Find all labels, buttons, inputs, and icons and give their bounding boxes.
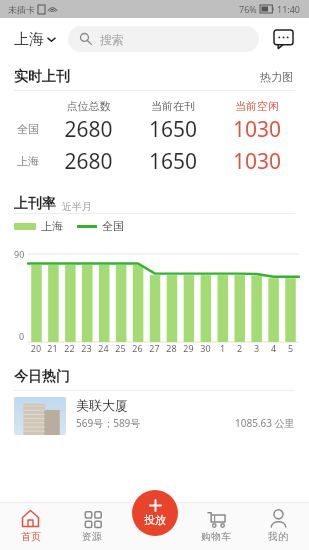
staticText: 购物车 bbox=[201, 530, 231, 543]
staticText: 上海 bbox=[10, 154, 46, 168]
button[interactable]: 搜索 bbox=[68, 26, 259, 52]
button[interactable]: 上海 bbox=[10, 145, 299, 177]
staticText: 搜索 bbox=[100, 32, 124, 47]
staticText: 1 bbox=[214, 342, 231, 354]
button[interactable]: 全国 bbox=[10, 113, 299, 145]
staticText: 0 bbox=[19, 330, 25, 342]
staticText: 4 bbox=[265, 342, 282, 354]
button[interactable]: 购物车 bbox=[185, 502, 247, 550]
staticText: 25 bbox=[112, 342, 129, 354]
staticText: 20 bbox=[28, 342, 44, 354]
staticText: 美联大厦 bbox=[76, 397, 128, 413]
button[interactable]: 上海 bbox=[12, 28, 58, 51]
staticText: 23 bbox=[78, 342, 95, 354]
staticText: 上刊率 bbox=[14, 195, 56, 213]
staticText: 上海 bbox=[14, 30, 44, 49]
staticText: 热力图 bbox=[260, 70, 293, 84]
button[interactable]: 投放 bbox=[132, 490, 178, 536]
staticText: 实时上刊 bbox=[14, 68, 70, 86]
staticText: 5 bbox=[282, 342, 299, 354]
staticText: 2680 bbox=[46, 115, 131, 144]
staticText: 22 bbox=[61, 342, 78, 354]
staticText: 上海 bbox=[41, 219, 63, 233]
staticText: 全国 bbox=[102, 219, 124, 233]
staticText: 3 bbox=[248, 342, 265, 354]
button[interactable]: 热力图 bbox=[258, 68, 295, 86]
button[interactable]: 首页 bbox=[0, 502, 61, 550]
staticText: 29 bbox=[180, 342, 197, 354]
staticText: 1085.63 公里 bbox=[235, 416, 295, 430]
staticText: 当前空闲 bbox=[215, 99, 299, 113]
staticText: 2 bbox=[231, 342, 248, 354]
staticText: 1030 bbox=[215, 115, 299, 144]
button[interactable]: 资源 bbox=[61, 502, 123, 550]
staticText: 2680 bbox=[46, 147, 131, 176]
staticText: 26 bbox=[129, 342, 146, 354]
button[interactable]: 消息 bbox=[269, 25, 297, 53]
button[interactable]: 我的 bbox=[247, 502, 309, 550]
staticText: 28 bbox=[163, 342, 180, 354]
button[interactable]: 美联大厦 bbox=[0, 391, 309, 435]
staticText: 21 bbox=[44, 342, 61, 354]
staticText: 未插卡 bbox=[8, 4, 35, 15]
staticText: 资源 bbox=[82, 530, 102, 543]
staticText: 当前在刊 bbox=[131, 99, 215, 113]
staticText: 首页 bbox=[21, 530, 41, 543]
staticText: 全国 bbox=[10, 122, 46, 136]
staticText: 24 bbox=[95, 342, 112, 354]
staticText: 1650 bbox=[131, 115, 215, 144]
staticText: 11:40 bbox=[277, 3, 301, 15]
staticText: 我的 bbox=[268, 530, 288, 543]
staticText: 27 bbox=[146, 342, 163, 354]
staticText: 90 bbox=[14, 248, 25, 260]
staticText: 投放 bbox=[144, 513, 166, 527]
staticText: 1650 bbox=[131, 147, 215, 176]
staticText: 76% bbox=[239, 3, 257, 15]
staticText: 近半月 bbox=[62, 200, 92, 213]
staticText: 今日热门 bbox=[14, 368, 70, 386]
staticText: 点位总数 bbox=[46, 99, 131, 113]
staticText: 1030 bbox=[215, 147, 299, 176]
staticText: 569号；589号 bbox=[76, 416, 141, 430]
staticText: 30 bbox=[197, 342, 214, 354]
